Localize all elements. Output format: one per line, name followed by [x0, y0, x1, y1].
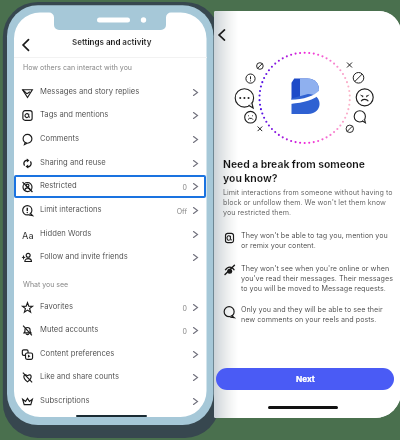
staticText: Comments: [40, 134, 79, 143]
staticText: They won't see when you're online or whe…: [241, 264, 393, 293]
button[interactable]: Back: [214, 26, 231, 44]
button[interactable]: Tags and mentions: [14, 104, 206, 127]
staticText: 0: [162, 327, 187, 335]
staticText: Favorites: [40, 302, 73, 311]
button[interactable]: Subscriptions: [14, 390, 206, 413]
button[interactable]: Back: [17, 36, 35, 54]
button[interactable]: Favorites: [14, 296, 206, 319]
staticText: Limit interactions from someone without …: [223, 188, 400, 217]
staticText: Limit interactions: [40, 205, 102, 214]
button[interactable]: Messages and story replies: [14, 81, 206, 104]
staticText: Restricted: [40, 181, 77, 190]
staticText: Next: [296, 374, 315, 384]
staticText: What you see: [23, 280, 69, 288]
button[interactable]: Comments: [14, 128, 206, 151]
button[interactable]: Restricted: [14, 175, 206, 198]
staticText: Off: [162, 207, 187, 215]
staticText: 0: [162, 183, 187, 191]
button[interactable]: Sharing and reuse: [14, 152, 206, 175]
staticText: Sharing and reuse: [40, 158, 106, 167]
staticText: Aa: [22, 230, 34, 241]
staticText: Need a break from someone you know?: [223, 158, 398, 184]
staticText: Muted accounts: [40, 325, 99, 334]
staticText: Tags and mentions: [40, 110, 109, 119]
button[interactable]: Follow and invite friends: [14, 246, 206, 269]
staticText: Hidden Words: [40, 229, 92, 238]
button[interactable]: Aa: [14, 223, 206, 246]
staticText: How others can interact with you: [23, 63, 132, 71]
staticText: Settings and activity: [72, 37, 152, 47]
staticText: Messages and story replies: [40, 87, 140, 96]
button[interactable]: Content preferences: [14, 343, 206, 366]
button[interactable]: Like and share counts: [14, 366, 206, 389]
button[interactable]: Limit interactions: [14, 199, 206, 222]
staticText: Follow and invite friends: [40, 252, 128, 261]
staticText: Like and share counts: [40, 372, 120, 381]
button[interactable]: Next: [216, 368, 394, 390]
staticText: Only you and they will be able to see th…: [241, 305, 393, 324]
staticText: Content preferences: [40, 349, 115, 358]
staticText: Subscriptions: [40, 396, 90, 405]
staticText: 0: [162, 304, 187, 312]
button[interactable]: Muted accounts: [14, 319, 206, 342]
staticText: They won't be able to tag you, mention y…: [241, 231, 393, 250]
